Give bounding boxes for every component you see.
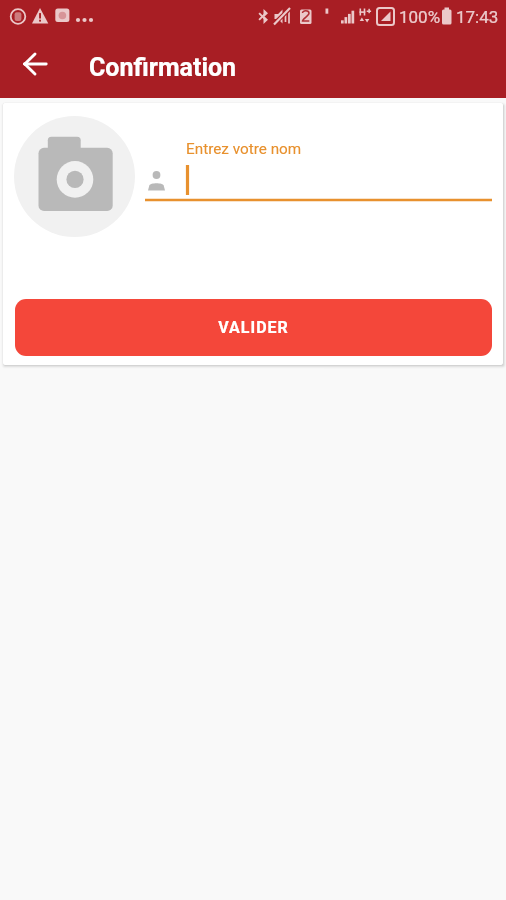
staticText: VALIDER [218,318,289,337]
staticText: Entrez votre nom [186,140,302,158]
staticText: 17:43 [456,7,499,27]
staticText: Confirmation [89,53,237,82]
button[interactable]: VALIDER [15,299,492,356]
button[interactable]: Back [11,41,59,89]
staticText: 100% [399,7,441,27]
button[interactable]: Add photo [14,116,135,237]
button[interactable]: Entrez votre nom [142,138,492,208]
